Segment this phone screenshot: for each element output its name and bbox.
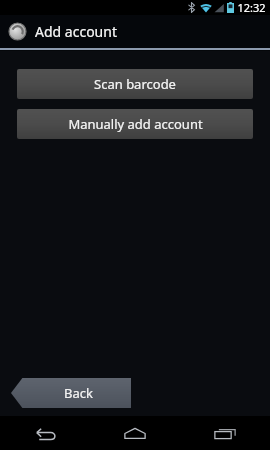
- staticText: 12:32: [237, 0, 266, 15]
- staticText: Manually add account: [68, 115, 203, 133]
- button[interactable]: Recent apps: [180, 416, 270, 450]
- staticText: Back: [64, 384, 93, 402]
- staticText: Add account: [35, 22, 117, 41]
- button[interactable]: Scan barcode: [17, 69, 253, 99]
- staticText: Scan barcode: [94, 75, 176, 93]
- button[interactable]: Manually add account: [17, 109, 253, 139]
- button[interactable]: Home: [90, 416, 180, 450]
- button[interactable]: Back: [11, 378, 131, 408]
- button[interactable]: Back: [0, 416, 90, 450]
